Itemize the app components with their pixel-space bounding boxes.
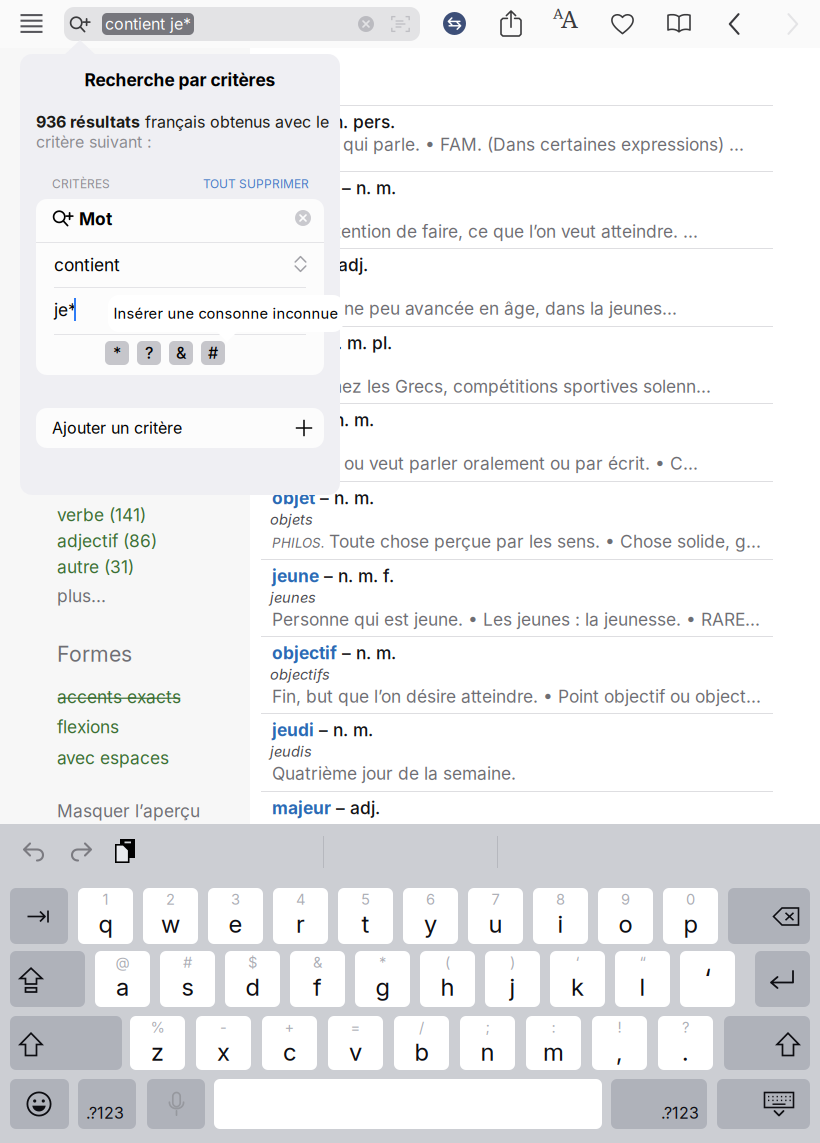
staticText: jeudi <box>272 719 314 740</box>
button[interactable]: Verrouillage majuscules <box>10 951 85 1007</box>
button[interactable]: jeune <box>261 559 773 636</box>
button[interactable]: # <box>160 951 215 1007</box>
staticText: 3 <box>231 891 240 908</box>
button[interactable]: majeur <box>261 791 773 824</box>
button[interactable]: ( <box>420 951 475 1007</box>
button[interactable]: 1 <box>78 888 133 944</box>
staticText: – pron. pers. <box>287 111 395 132</box>
button[interactable]: ) <box>485 951 540 1007</box>
staticText: m <box>543 1037 564 1066</box>
button[interactable]: = <box>328 1016 383 1070</box>
button[interactable]: adjectif (86) <box>57 529 257 553</box>
staticText: autre (31) <box>57 556 134 577</box>
button[interactable]: ! <box>592 1016 647 1070</box>
button[interactable]: objet <box>261 403 773 481</box>
button[interactable]: avec espaces <box>57 746 257 770</box>
button[interactable]: : <box>526 1016 581 1070</box>
button[interactable]: 7 <box>468 888 523 944</box>
button[interactable]: Masquer l’aperçu <box>57 799 257 823</box>
button[interactable]: Champ de recherche <box>64 7 420 41</box>
staticText: : <box>551 1019 555 1036</box>
button[interactable]: ? <box>658 1016 713 1070</box>
button[interactable]: 6 <box>403 888 458 944</box>
staticText: y <box>424 909 437 938</box>
button[interactable]: Précédent <box>728 13 741 35</box>
staticText: Mot <box>79 208 112 229</box>
button[interactable]: Favoris <box>611 12 634 35</box>
button[interactable]: Masquer le clavier <box>717 1079 810 1129</box>
button[interactable]: 4 <box>273 888 328 944</box>
staticText: – n. m. <box>337 642 396 663</box>
button[interactable]: plus... <box>57 584 257 608</box>
button[interactable]: / <box>394 1016 449 1070</box>
button[interactable]: objectif <box>261 171 773 248</box>
button[interactable]: 3 <box>208 888 263 944</box>
button[interactable]: jeudi <box>261 713 773 791</box>
staticText: ) <box>510 954 515 971</box>
button[interactable]: & <box>290 951 345 1007</box>
button[interactable]: 2 <box>143 888 198 944</box>
button[interactable]: Ajouter un critère <box>36 408 324 448</box>
button[interactable]: ? <box>137 341 161 365</box>
button[interactable]: .?123 <box>78 1079 136 1129</box>
button[interactable]: $ <box>225 951 280 1007</box>
button[interactable]: ‘ <box>680 951 735 1007</box>
button[interactable]: Partager <box>500 10 522 37</box>
button[interactable]: % <box>130 1016 185 1070</box>
button[interactable]: 9 <box>598 888 653 944</box>
staticText: – n. m. <box>315 487 374 508</box>
button[interactable]: jeux <box>261 326 773 403</box>
button[interactable]: 0 <box>663 888 718 944</box>
button[interactable]: accents exacts <box>57 685 257 709</box>
button[interactable]: + <box>262 1016 317 1070</box>
button[interactable]: Inverser <box>443 12 466 35</box>
button[interactable]: Supprimer <box>728 888 810 944</box>
button[interactable]: ‘ <box>550 951 605 1007</box>
button[interactable]: Effacer le critère <box>295 210 311 226</box>
staticText: jeunes <box>270 589 316 606</box>
button[interactable]: objectif <box>261 636 773 713</box>
staticText: i <box>557 909 563 938</box>
button[interactable]: .?123 <box>611 1079 707 1129</box>
button[interactable]: autre (31) <box>57 555 257 579</box>
button[interactable]: “ <box>615 951 670 1007</box>
staticText: e personne peu avancée en âge, dans la j… <box>272 298 677 319</box>
staticText: ; <box>485 1019 489 1036</box>
button[interactable]: Tabulation <box>10 888 68 944</box>
button[interactable]: & <box>169 341 193 365</box>
button[interactable]: flexions <box>57 715 257 739</box>
button[interactable]: - <box>196 1016 251 1070</box>
staticText: q <box>98 909 112 938</box>
button[interactable]: ; <box>460 1016 515 1070</box>
button[interactable]: * <box>105 341 129 365</box>
button[interactable]: Rétablir <box>67 841 93 863</box>
button[interactable]: Emoji <box>10 1079 69 1129</box>
staticText: r <box>296 909 305 938</box>
button[interactable]: verbe (141) <box>57 503 257 527</box>
button[interactable]: Majuscule <box>724 1016 810 1070</box>
staticText: – n. m. pl. <box>308 332 392 353</box>
button[interactable]: Dictée <box>147 1079 205 1129</box>
button[interactable]: # <box>201 341 225 365</box>
button[interactable]: TOUT SUPPRIMER <box>177 176 309 192</box>
button[interactable]: Menu <box>20 14 43 33</box>
button[interactable]: jeune <box>261 248 773 326</box>
button[interactable]: Majuscule <box>10 1016 122 1070</box>
staticText: u <box>488 909 502 938</box>
button[interactable]: Suivant <box>786 13 799 35</box>
button[interactable]: Coller <box>112 836 138 864</box>
button[interactable]: * <box>355 951 410 1007</box>
button[interactable]: Retour <box>755 951 810 1007</box>
button[interactable]: Dictionnaire <box>667 13 691 34</box>
button[interactable]: Annuler <box>22 841 48 863</box>
staticText: jeunes <box>270 278 316 295</box>
button[interactable]: 5 <box>338 888 393 944</box>
button[interactable]: je <box>261 105 773 171</box>
button[interactable]: @ <box>95 951 150 1007</box>
button[interactable]: objet <box>261 481 773 559</box>
button[interactable]: 8 <box>533 888 588 944</box>
staticText: f <box>313 972 322 1001</box>
staticText: jeux <box>272 332 308 353</box>
button[interactable]: Taille du texte <box>553 12 580 35</box>
